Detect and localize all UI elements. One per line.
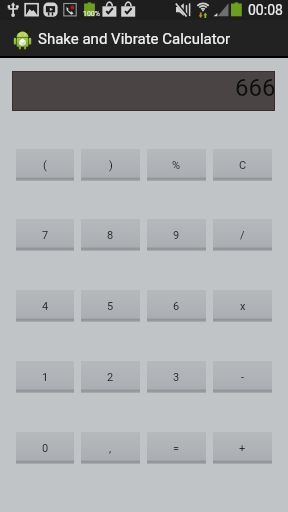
staticText: 100%	[83, 10, 100, 18]
staticText: 6	[173, 300, 180, 313]
button[interactable]: =	[147, 432, 206, 464]
staticText: 7	[42, 229, 49, 242]
staticText: 8	[107, 229, 114, 242]
button[interactable]: %	[147, 149, 206, 181]
staticText: 3	[173, 371, 180, 384]
staticText: 5	[107, 300, 114, 313]
button[interactable]: C	[213, 149, 272, 181]
button[interactable]: 4	[16, 290, 74, 322]
button[interactable]: /	[213, 219, 272, 251]
staticText: %	[172, 159, 181, 172]
staticText: (	[43, 159, 47, 172]
staticText: 00:08	[248, 2, 283, 18]
staticText: ,	[109, 442, 112, 455]
staticText: 0	[42, 442, 49, 455]
staticText: +	[239, 442, 246, 455]
button[interactable]: 7	[16, 219, 74, 251]
button[interactable]: -	[213, 361, 272, 393]
staticText: 4	[42, 300, 49, 313]
staticText: 1	[42, 371, 49, 384]
button[interactable]: 9	[147, 219, 206, 251]
button[interactable]: ,	[81, 432, 140, 464]
staticText: 666	[235, 74, 276, 102]
button[interactable]: +	[213, 432, 272, 464]
button[interactable]: )	[81, 149, 140, 181]
staticText: /	[240, 229, 245, 242]
button[interactable]: 8	[81, 219, 140, 251]
button[interactable]: 0	[16, 432, 74, 464]
button[interactable]: 2	[81, 361, 140, 393]
button[interactable]: 5	[81, 290, 140, 322]
staticText: 9	[173, 229, 180, 242]
button[interactable]: x	[213, 290, 272, 322]
staticText: )	[109, 159, 113, 172]
staticText: Shake and Vibrate Calculator	[38, 30, 231, 48]
staticText: -	[241, 371, 245, 384]
button[interactable]: 6	[147, 290, 206, 322]
button[interactable]: 3	[147, 361, 206, 393]
staticText: C	[239, 159, 247, 172]
staticText: x	[240, 300, 246, 313]
staticText: =	[173, 442, 180, 455]
button[interactable]: (	[16, 149, 74, 181]
staticText: 2	[107, 371, 114, 384]
button[interactable]: 1	[16, 361, 74, 393]
